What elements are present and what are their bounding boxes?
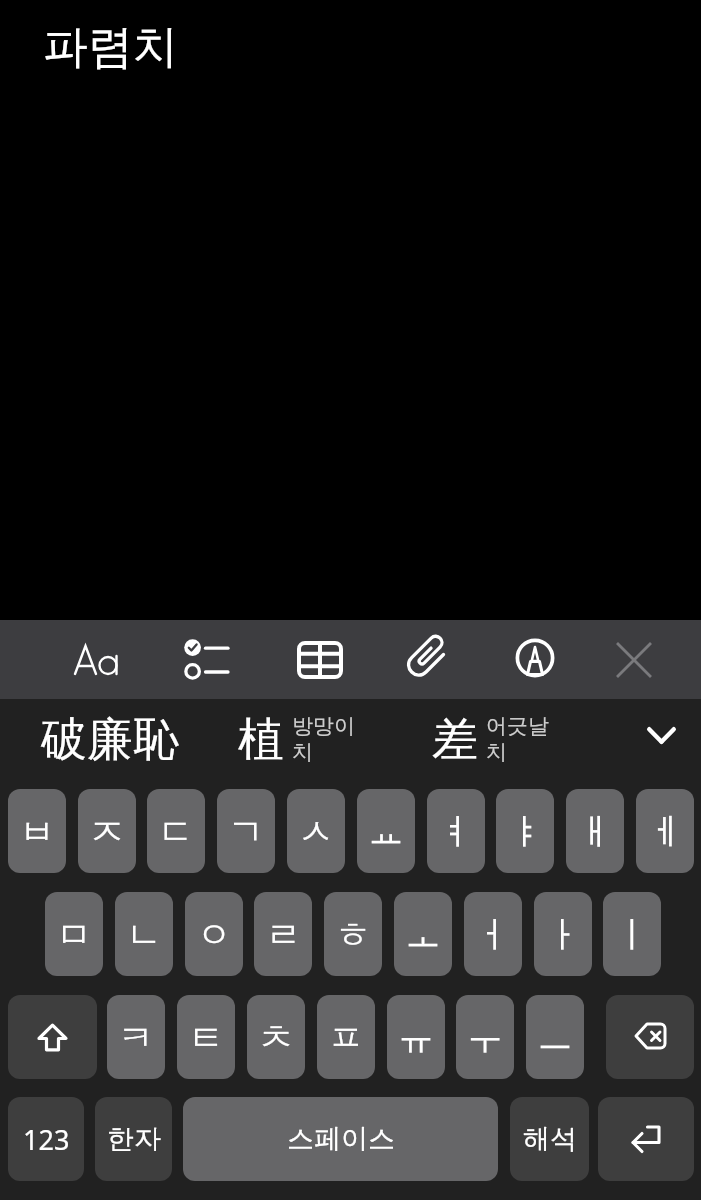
button[interactable]: ㄷ [147, 789, 205, 873]
staticText: ㅅ [298, 809, 334, 854]
button[interactable]: Attach file [378, 620, 482, 699]
button[interactable]: ㅋ [107, 995, 165, 1079]
staticText: 123 [23, 1121, 70, 1158]
button[interactable]: Shift [8, 995, 97, 1079]
staticText: ㅣ [614, 912, 650, 957]
button[interactable]: ㅗ [394, 892, 452, 976]
staticText: ㄷ [158, 809, 194, 854]
button[interactable]: Insert table [265, 620, 375, 699]
button[interactable]: ㅡ [526, 995, 584, 1079]
button[interactable]: More candidates [629, 699, 694, 781]
button[interactable]: ㅠ [387, 995, 445, 1079]
staticText: ㄹ [265, 912, 301, 957]
staticText: ㅌ [188, 1015, 224, 1060]
staticText: ㄱ [228, 809, 264, 854]
staticText: ㅎ [335, 912, 371, 957]
button[interactable]: ㅕ [427, 789, 485, 873]
staticText: ㅡ [537, 1015, 573, 1060]
staticText: ㅇ [196, 912, 232, 957]
staticText: ㅏ [545, 912, 581, 957]
button[interactable]: 스페이스 [183, 1097, 498, 1181]
staticText: 植 [238, 711, 284, 769]
button[interactable]: ㅌ [177, 995, 235, 1079]
button[interactable]: ㅓ [464, 892, 522, 976]
staticText: ㅔ [647, 809, 683, 854]
button[interactable]: 差 [432, 699, 549, 781]
button[interactable]: 123 [8, 1097, 84, 1181]
button[interactable]: ㄴ [115, 892, 173, 976]
staticText: ㅜ [467, 1015, 503, 1060]
button[interactable]: ㅂ [8, 789, 66, 873]
staticText: ㅑ [507, 809, 543, 854]
button[interactable]: Text format [57, 620, 137, 699]
staticText: 파렴치 [43, 19, 178, 76]
button[interactable]: Markup [482, 620, 588, 699]
button[interactable]: 植 [238, 699, 355, 781]
button[interactable]: ㅜ [456, 995, 514, 1079]
staticText: ㅁ [56, 912, 92, 957]
staticText: ㅠ [398, 1015, 434, 1060]
staticText: 스페이스 [287, 1122, 395, 1156]
staticText: ㅛ [368, 809, 404, 854]
button[interactable]: ㅅ [287, 789, 345, 873]
button[interactable]: ㄱ [217, 789, 275, 873]
button[interactable]: ㅑ [496, 789, 554, 873]
button[interactable]: Enter [598, 1097, 694, 1181]
button[interactable]: ㅎ [324, 892, 382, 976]
staticText: ㅊ [258, 1015, 294, 1060]
button[interactable]: ㅐ [566, 789, 624, 873]
staticText: ㅗ [405, 912, 441, 957]
button[interactable]: ㅈ [78, 789, 136, 873]
button[interactable]: Close [583, 620, 684, 699]
staticText: 한자 [107, 1122, 161, 1156]
button[interactable]: ㅍ [317, 995, 375, 1079]
button[interactable]: ㅁ [45, 892, 103, 976]
button[interactable]: Checklist [152, 620, 262, 699]
button[interactable]: ㄹ [254, 892, 312, 976]
staticText: ㅈ [89, 809, 125, 854]
button[interactable]: ㅇ [185, 892, 243, 976]
button[interactable]: 해석 [510, 1097, 589, 1181]
staticText: 差 [432, 711, 478, 769]
button[interactable]: ㅔ [636, 789, 694, 873]
staticText: ㄴ [126, 912, 162, 957]
button[interactable]: ㅣ [603, 892, 661, 976]
staticText: ㅋ [118, 1015, 154, 1060]
button[interactable]: ㅊ [247, 995, 305, 1079]
button[interactable]: ㅏ [534, 892, 592, 976]
staticText: ㅐ [577, 809, 613, 854]
staticText: ㅕ [438, 809, 474, 854]
button[interactable]: 破廉恥 [41, 699, 179, 781]
staticText: 어긋날 치 [486, 713, 549, 766]
button[interactable]: ㅛ [357, 789, 415, 873]
staticText: 방망이 치 [292, 713, 355, 766]
staticText: 破廉恥 [41, 711, 179, 769]
button[interactable]: 한자 [95, 1097, 172, 1181]
staticText: ㅓ [475, 912, 511, 957]
staticText: ㅍ [328, 1015, 364, 1060]
button[interactable]: Backspace [606, 995, 694, 1079]
staticText: 해석 [523, 1122, 577, 1156]
staticText: ㅂ [19, 809, 55, 854]
